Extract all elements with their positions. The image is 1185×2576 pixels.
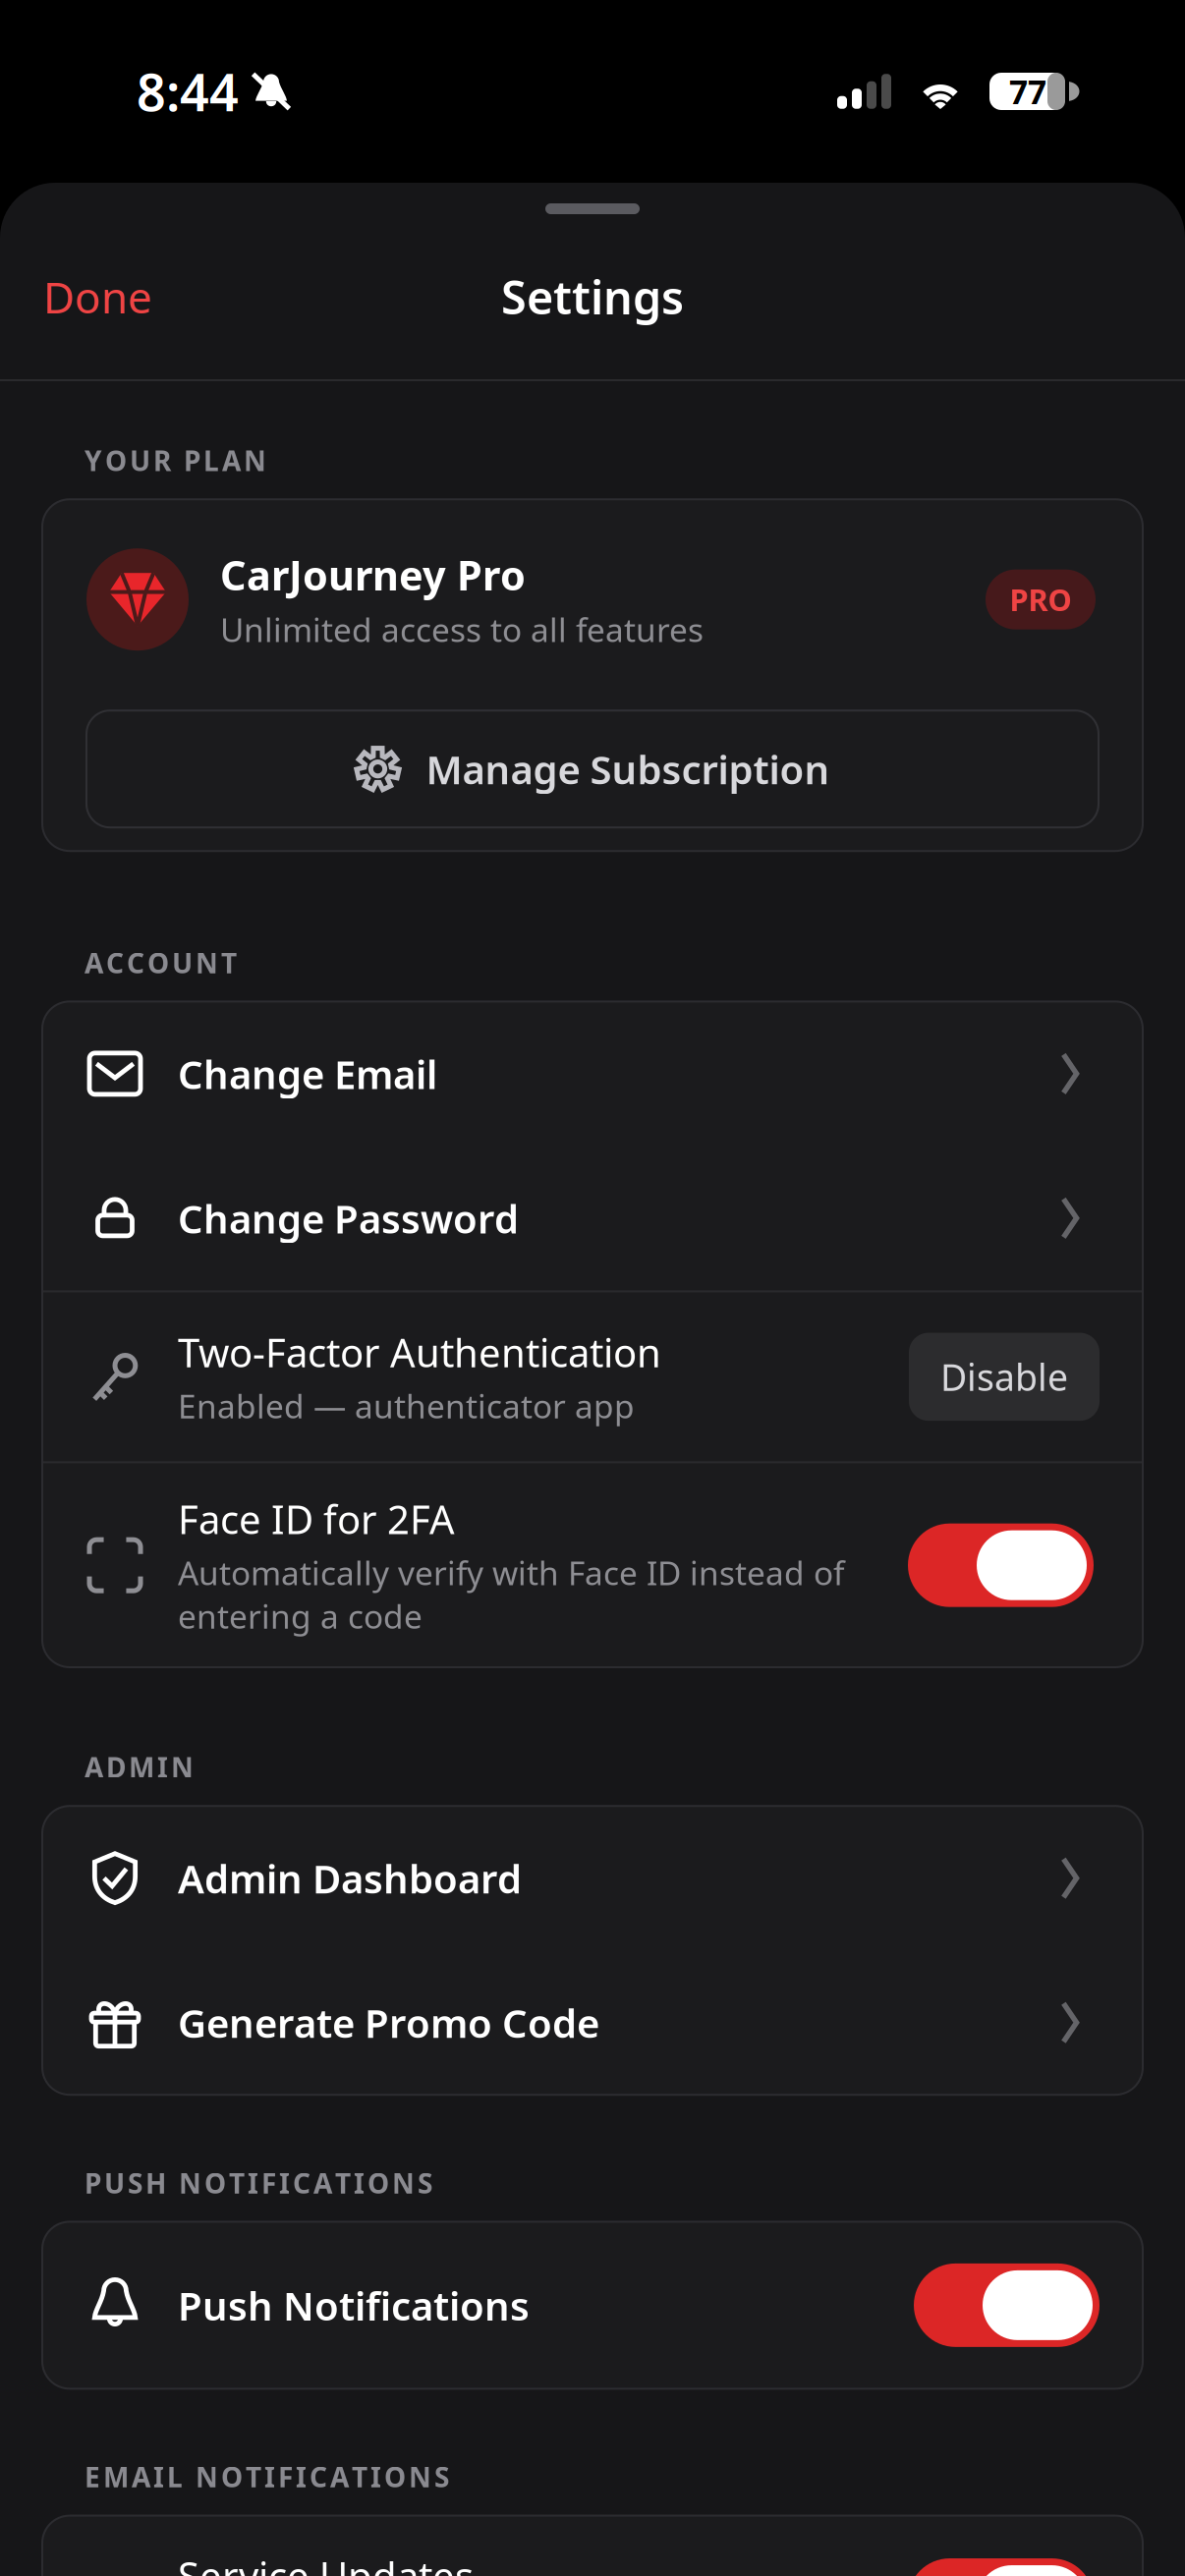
staticText: Done — [43, 268, 152, 325]
button[interactable] — [908, 1523, 1094, 1607]
staticText: CarJourney Pro — [220, 548, 526, 602]
staticText: Manage Subscription — [426, 743, 830, 795]
staticText: Admin Dashboard — [178, 1852, 522, 1904]
staticText: 77 — [1009, 70, 1046, 113]
button[interactable]: Admin Dashboard — [42, 1806, 1143, 1950]
staticText: Change Password — [178, 1192, 519, 1244]
staticText: Y O U R P L A N — [85, 442, 266, 479]
button[interactable]: Disable — [909, 1333, 1100, 1421]
button[interactable]: Generate Promo Code — [42, 1950, 1143, 2095]
staticText: 8:44 — [137, 57, 239, 125]
button[interactable]: Manage Subscription — [42, 655, 1143, 851]
staticText: Push Notifications — [178, 2279, 530, 2331]
button[interactable] — [914, 2263, 1100, 2347]
button[interactable]: Change Password — [42, 1146, 1143, 1290]
staticText: Automatically verify with Face ID instea… — [178, 1551, 844, 1638]
staticText: A D M I N — [85, 1749, 194, 1785]
staticText: Disable — [940, 1352, 1068, 1401]
staticText: Service Updates — [178, 2549, 474, 2576]
staticText: Generate Promo Code — [178, 1996, 599, 2049]
button[interactable]: Change Email — [42, 1002, 1143, 1146]
staticText: A C C O U N T — [85, 944, 237, 981]
staticText: E M A I L N O T I F I C A T I O N S — [85, 2458, 449, 2495]
staticText: Settings — [501, 266, 684, 327]
staticText: Face ID for 2FA — [178, 1493, 455, 1545]
staticText: Enabled — authenticator app — [178, 1384, 635, 1428]
staticText: PRO — [1010, 579, 1072, 619]
staticText: Two-Factor Authentication — [178, 1326, 661, 1378]
staticText: Change Email — [178, 1048, 437, 1100]
button[interactable]: Done — [0, 248, 196, 345]
staticText: Unlimited access to all features — [220, 608, 704, 651]
staticText: P U S H N O T I F I C A T I O N S — [85, 2165, 432, 2201]
button[interactable] — [908, 2558, 1094, 2576]
